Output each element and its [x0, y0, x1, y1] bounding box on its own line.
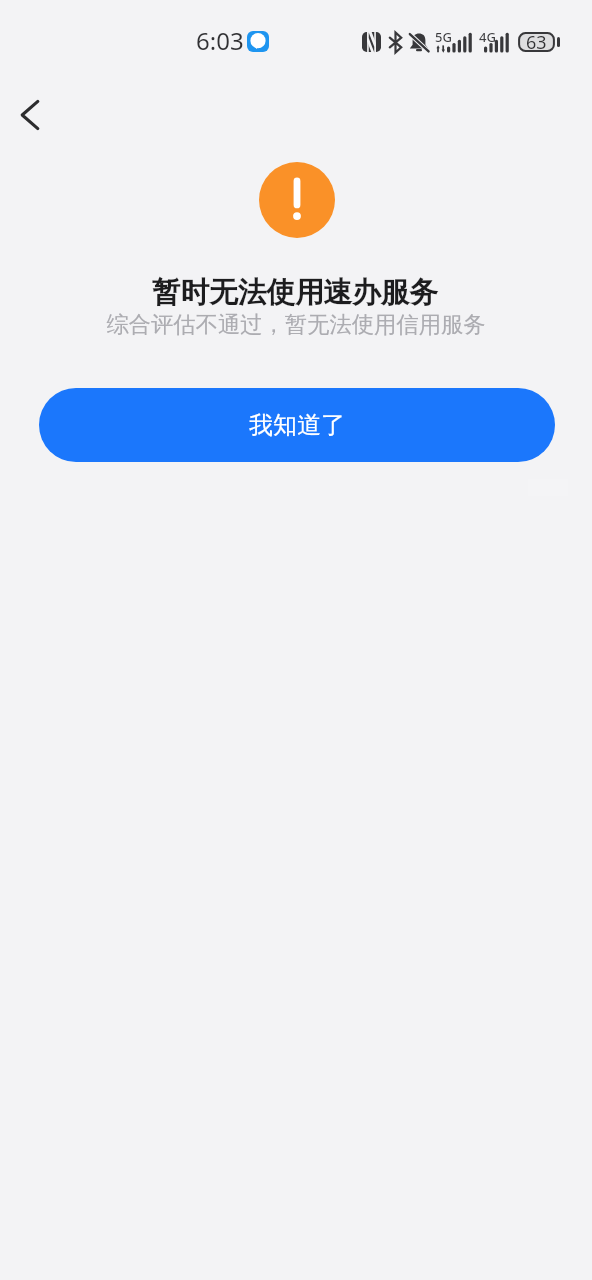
- staticText: 4G: [479, 28, 496, 46]
- button[interactable]: 我知道了: [39, 388, 555, 462]
- staticText: 我知道了: [249, 410, 345, 440]
- staticText: 暂时无法使用速办服务: [152, 274, 438, 310]
- staticText: 5G: [435, 28, 452, 46]
- staticText: 6:03: [196, 24, 244, 57]
- staticText: 综合评估不通过，暂无法使用信用服务: [106, 311, 486, 339]
- staticText: 63: [526, 30, 547, 50]
- button[interactable]: Back: [7, 92, 53, 138]
